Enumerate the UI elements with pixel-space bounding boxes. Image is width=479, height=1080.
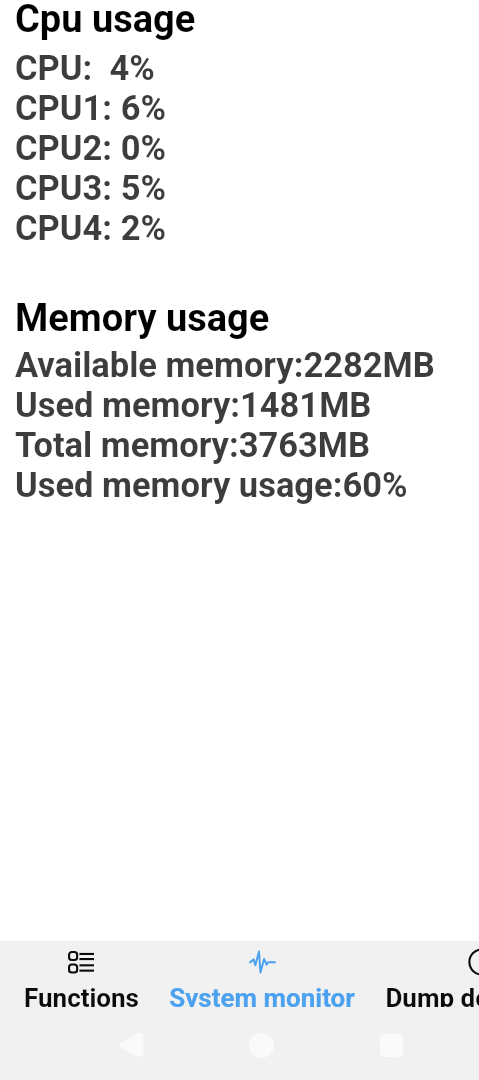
button[interactable]: Back (104, 1019, 156, 1071)
staticText: CPU3: 5% (15, 168, 166, 208)
staticText: CPU2: 0% (15, 128, 166, 168)
staticText: Memory usage (15, 296, 270, 341)
staticText: Used memory usage:60% (15, 465, 408, 505)
button[interactable]: Home (235, 1019, 287, 1071)
staticText: CPU: 4% (15, 48, 155, 88)
button[interactable]: System monitor (142, 941, 382, 1007)
staticText: Used memory:1481MB (15, 385, 372, 425)
staticText: System monitor (169, 983, 355, 1007)
staticText: Dump device log (385, 983, 479, 1007)
button[interactable]: Recents (365, 1019, 417, 1071)
staticText: Cpu usage (15, 0, 196, 42)
staticText: CPU4: 2% (15, 208, 166, 248)
staticText: CPU1: 6% (15, 88, 166, 128)
staticText: Functions (24, 983, 139, 1007)
button[interactable]: Dump device log (362, 941, 479, 1007)
button[interactable]: Functions (0, 941, 201, 1007)
staticText: Available memory:2282MB (15, 345, 435, 385)
staticText: Total memory:3763MB (15, 425, 371, 465)
